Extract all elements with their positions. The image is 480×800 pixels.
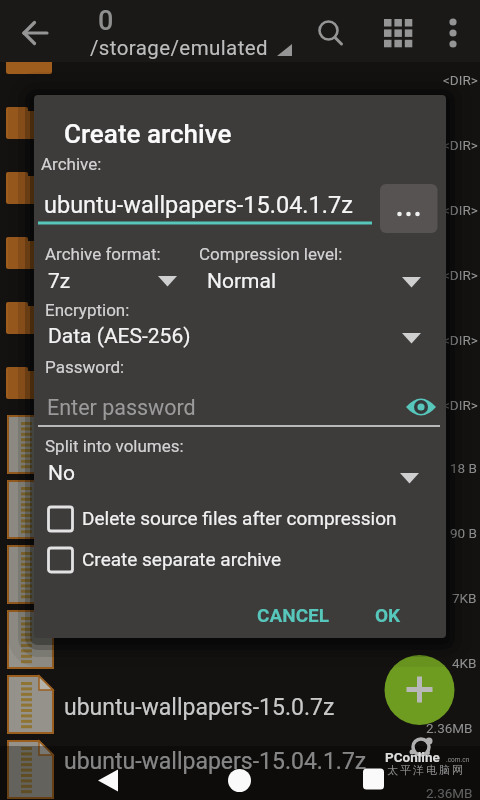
staticText: No <box>48 461 75 486</box>
staticText: OK <box>375 604 401 626</box>
staticText: ubuntu-wallpapers-15.04.1.7z <box>64 748 367 775</box>
staticText: ubuntu-wallpapers-15.04.1.7z <box>44 191 353 219</box>
staticText: Enter password <box>47 395 196 420</box>
staticText: 7KB <box>452 590 477 606</box>
staticText: Password: <box>45 357 125 377</box>
staticText: 0 <box>98 5 114 37</box>
staticText: 18 B <box>450 460 477 476</box>
staticText: <DIR> <box>443 72 478 88</box>
staticText: Delete source files after compression <box>82 507 397 529</box>
staticText: Normal <box>207 269 277 294</box>
staticText: 2.36MB <box>426 720 473 736</box>
staticText: <DIR> <box>443 267 478 283</box>
staticText: Compression level: <box>199 244 343 264</box>
staticText: <DIR> <box>443 137 478 153</box>
staticText: 太平洋电脑网 <box>386 763 464 777</box>
staticText: <DIR> <box>443 332 478 348</box>
staticText: <DIR> <box>443 397 478 413</box>
staticText: ubuntu-wallpapers-15.0.7z <box>64 694 335 721</box>
staticText: PConline <box>385 749 440 765</box>
staticText: /storage/emulated <box>90 36 268 60</box>
staticText: Archive: <box>41 154 102 174</box>
staticText: 2.36MB <box>426 785 473 800</box>
staticText: CANCEL <box>257 604 330 626</box>
staticText: .com.cn <box>446 756 470 764</box>
staticText: Encryption: <box>45 300 130 320</box>
staticText: Create archive <box>64 119 232 149</box>
staticText: 7z <box>48 269 71 294</box>
staticText: Create separate archive <box>82 548 282 570</box>
staticText: 4KB <box>452 655 477 671</box>
staticText: 90 B <box>450 525 477 541</box>
staticText: Split into volumes: <box>45 436 184 456</box>
staticText: Archive format: <box>45 244 161 264</box>
staticText: Data (AES-256) <box>48 324 191 349</box>
staticText: <DIR> <box>443 202 478 218</box>
